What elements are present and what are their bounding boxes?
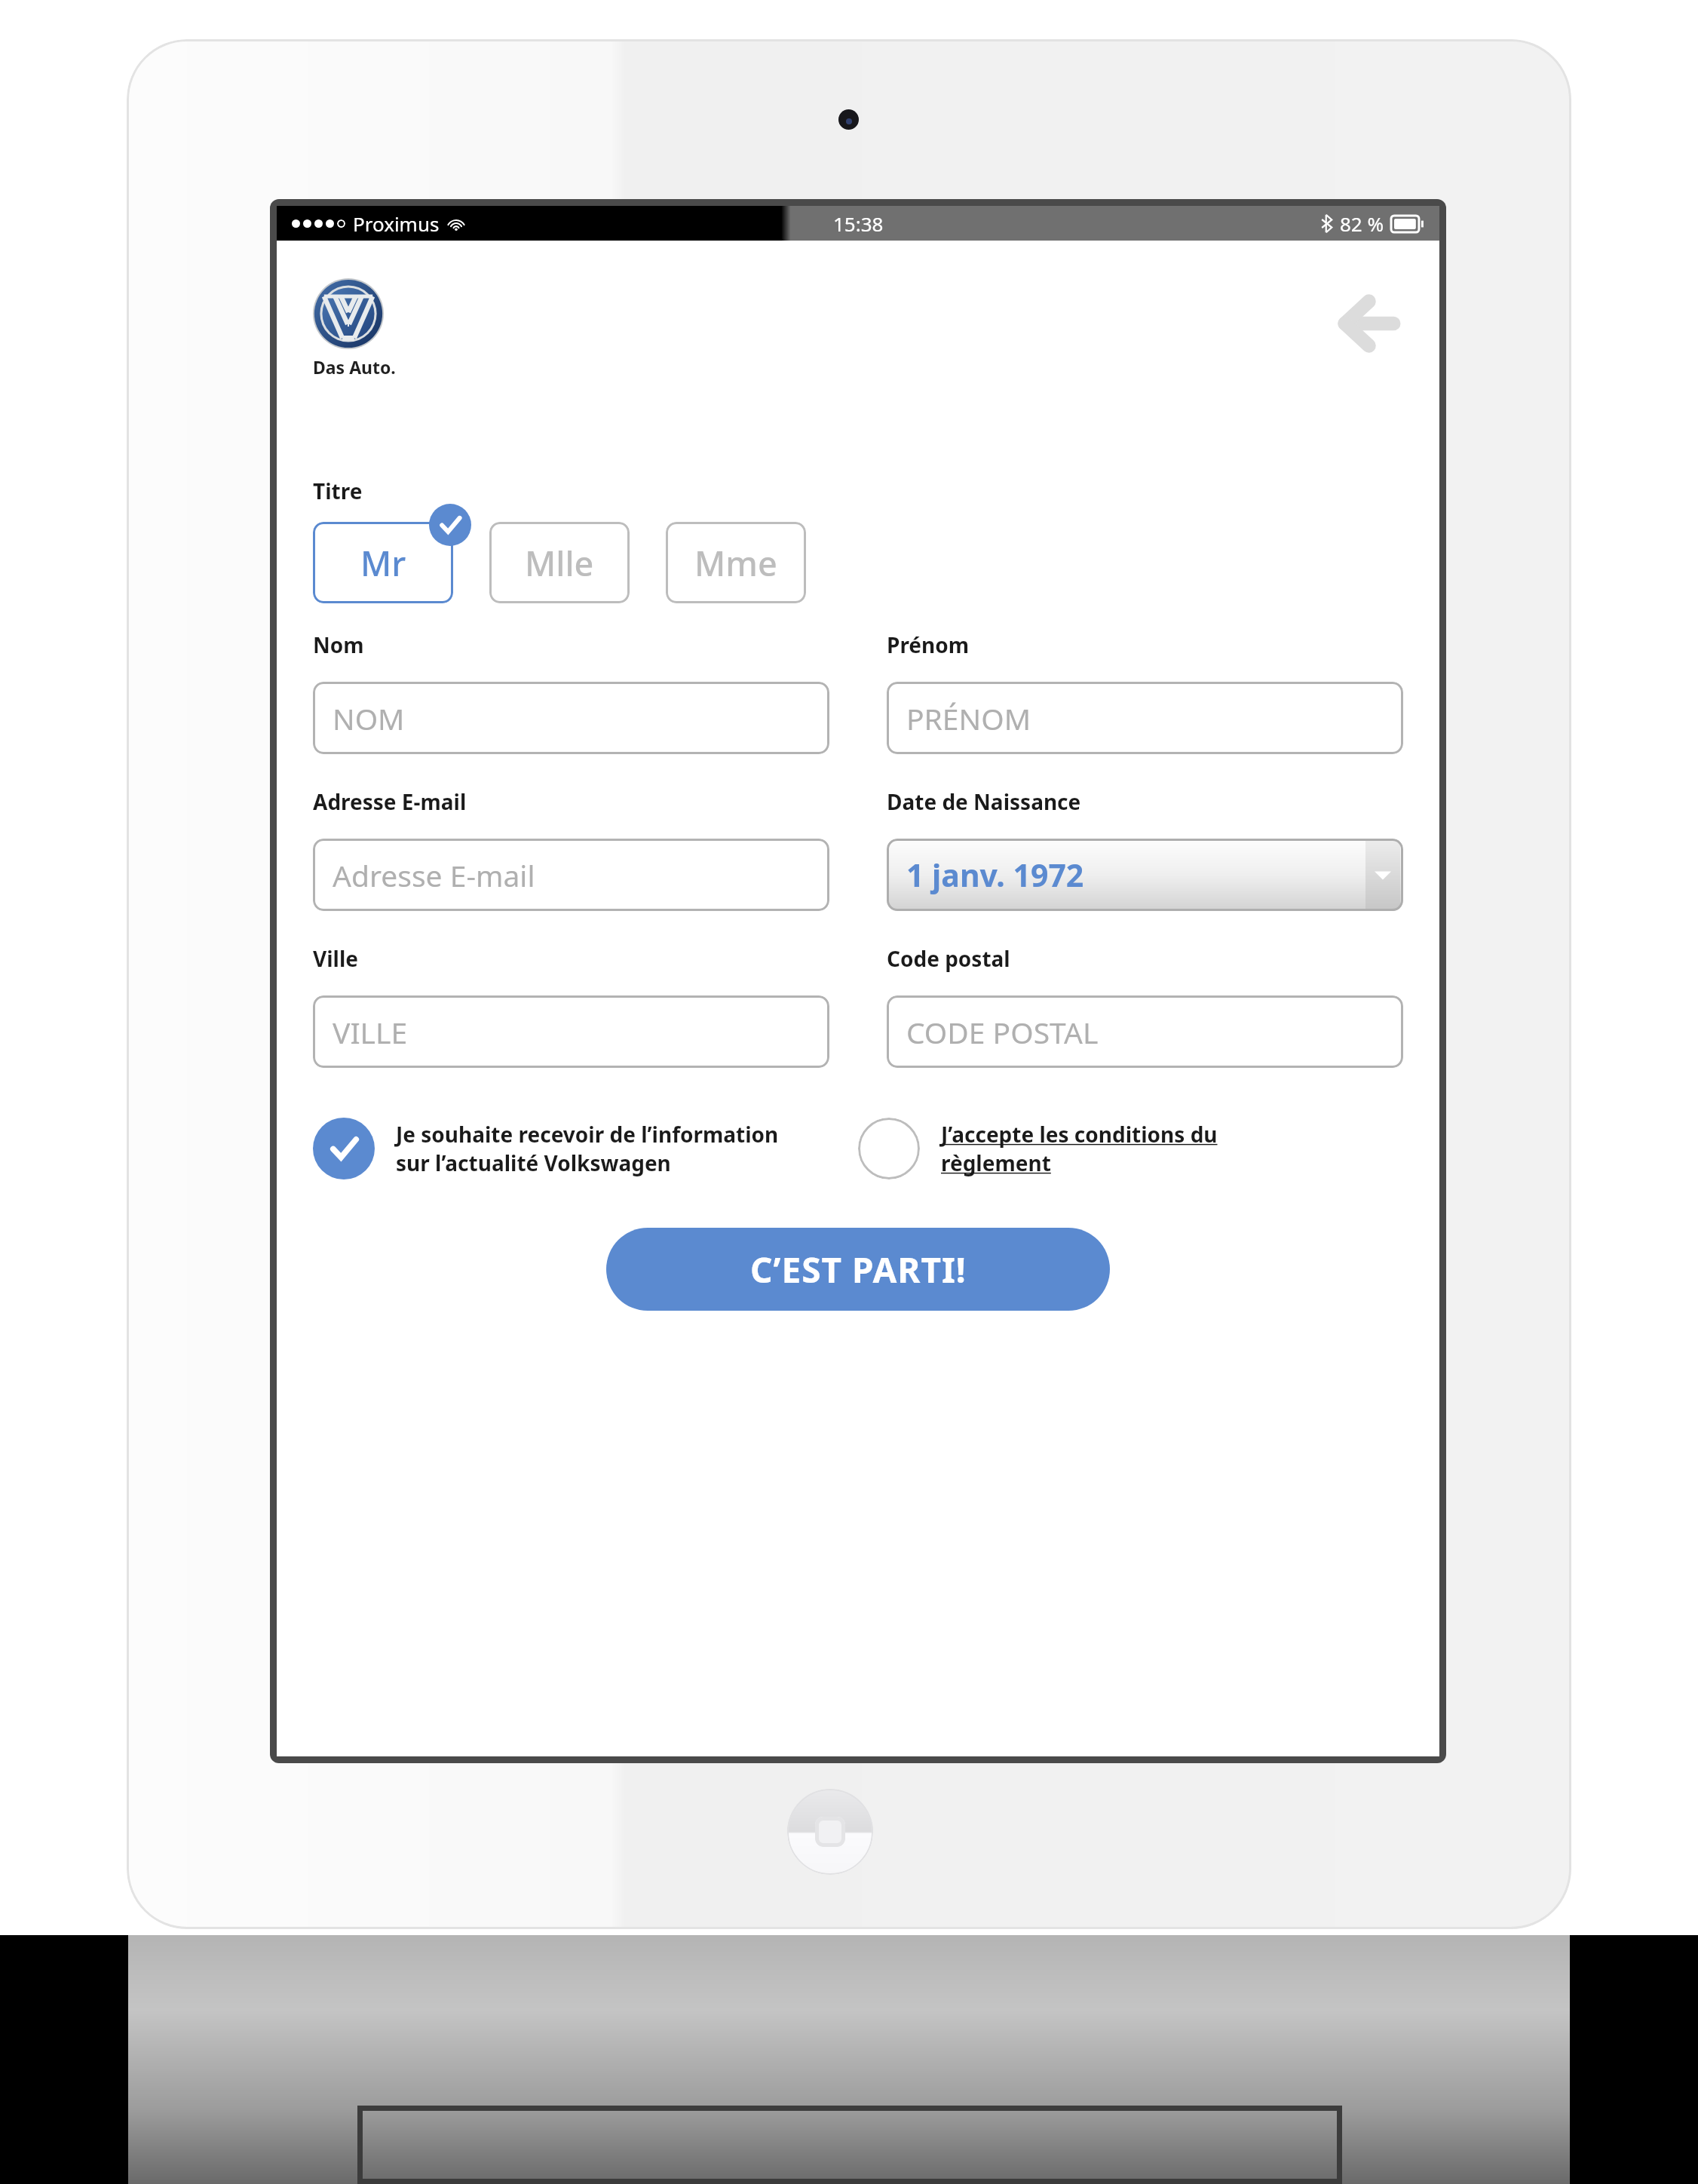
staticText: règlement <box>941 1149 1051 1177</box>
staticText: sur l’actualité Volkswagen <box>396 1149 671 1177</box>
button[interactable]: VILLE <box>313 995 829 1068</box>
staticText: Titre <box>313 477 363 505</box>
staticText: Mr <box>360 540 406 586</box>
staticText: Adresse E-mail <box>333 855 535 895</box>
staticText: Date de Naissance <box>887 787 1081 816</box>
button[interactable]: Mme <box>666 522 806 603</box>
staticText: PRÉNOM <box>906 698 1031 738</box>
staticText: Ville <box>313 944 358 973</box>
button[interactable]: Adresse E-mail <box>313 839 829 911</box>
staticText: Prénom <box>887 630 970 659</box>
staticText: Adresse E-mail <box>313 787 467 816</box>
staticText: Nom <box>313 630 364 659</box>
staticText: Mme <box>694 540 777 586</box>
staticText: Je souhaite recevoir de l’information <box>396 1120 779 1149</box>
staticText: NOM <box>333 698 405 738</box>
button[interactable]: NOM <box>313 682 829 754</box>
staticText: 1 janv. 1972 <box>906 854 1084 896</box>
staticText: J’accepte les conditions du <box>941 1120 1218 1149</box>
button[interactable]: Back <box>1331 287 1403 360</box>
button[interactable]: 1 janv. 1972 <box>887 839 1403 911</box>
button[interactable]: PRÉNOM <box>887 682 1403 754</box>
staticText: 15:38 <box>833 210 884 237</box>
button[interactable]: Home <box>787 1789 873 1875</box>
staticText: Mlle <box>525 540 594 586</box>
staticText: Proximus <box>353 210 440 237</box>
staticText: CODE POSTAL <box>906 1012 1099 1052</box>
staticText: VILLE <box>333 1012 408 1052</box>
button[interactable]: Mr <box>313 522 453 603</box>
staticText: Code postal <box>887 944 1010 973</box>
button[interactable]: J’accepte les conditions du <box>858 1118 1403 1179</box>
staticText: Das Auto. <box>313 355 396 379</box>
staticText: C’EST PARTI! <box>750 1246 967 1293</box>
button[interactable]: Mlle <box>489 522 630 603</box>
button[interactable]: CODE POSTAL <box>887 995 1403 1068</box>
staticText: 82 % <box>1340 210 1384 237</box>
button[interactable]: C’EST PARTI! <box>606 1228 1110 1311</box>
button[interactable]: Je souhaite recevoir de l’information <box>313 1118 858 1179</box>
